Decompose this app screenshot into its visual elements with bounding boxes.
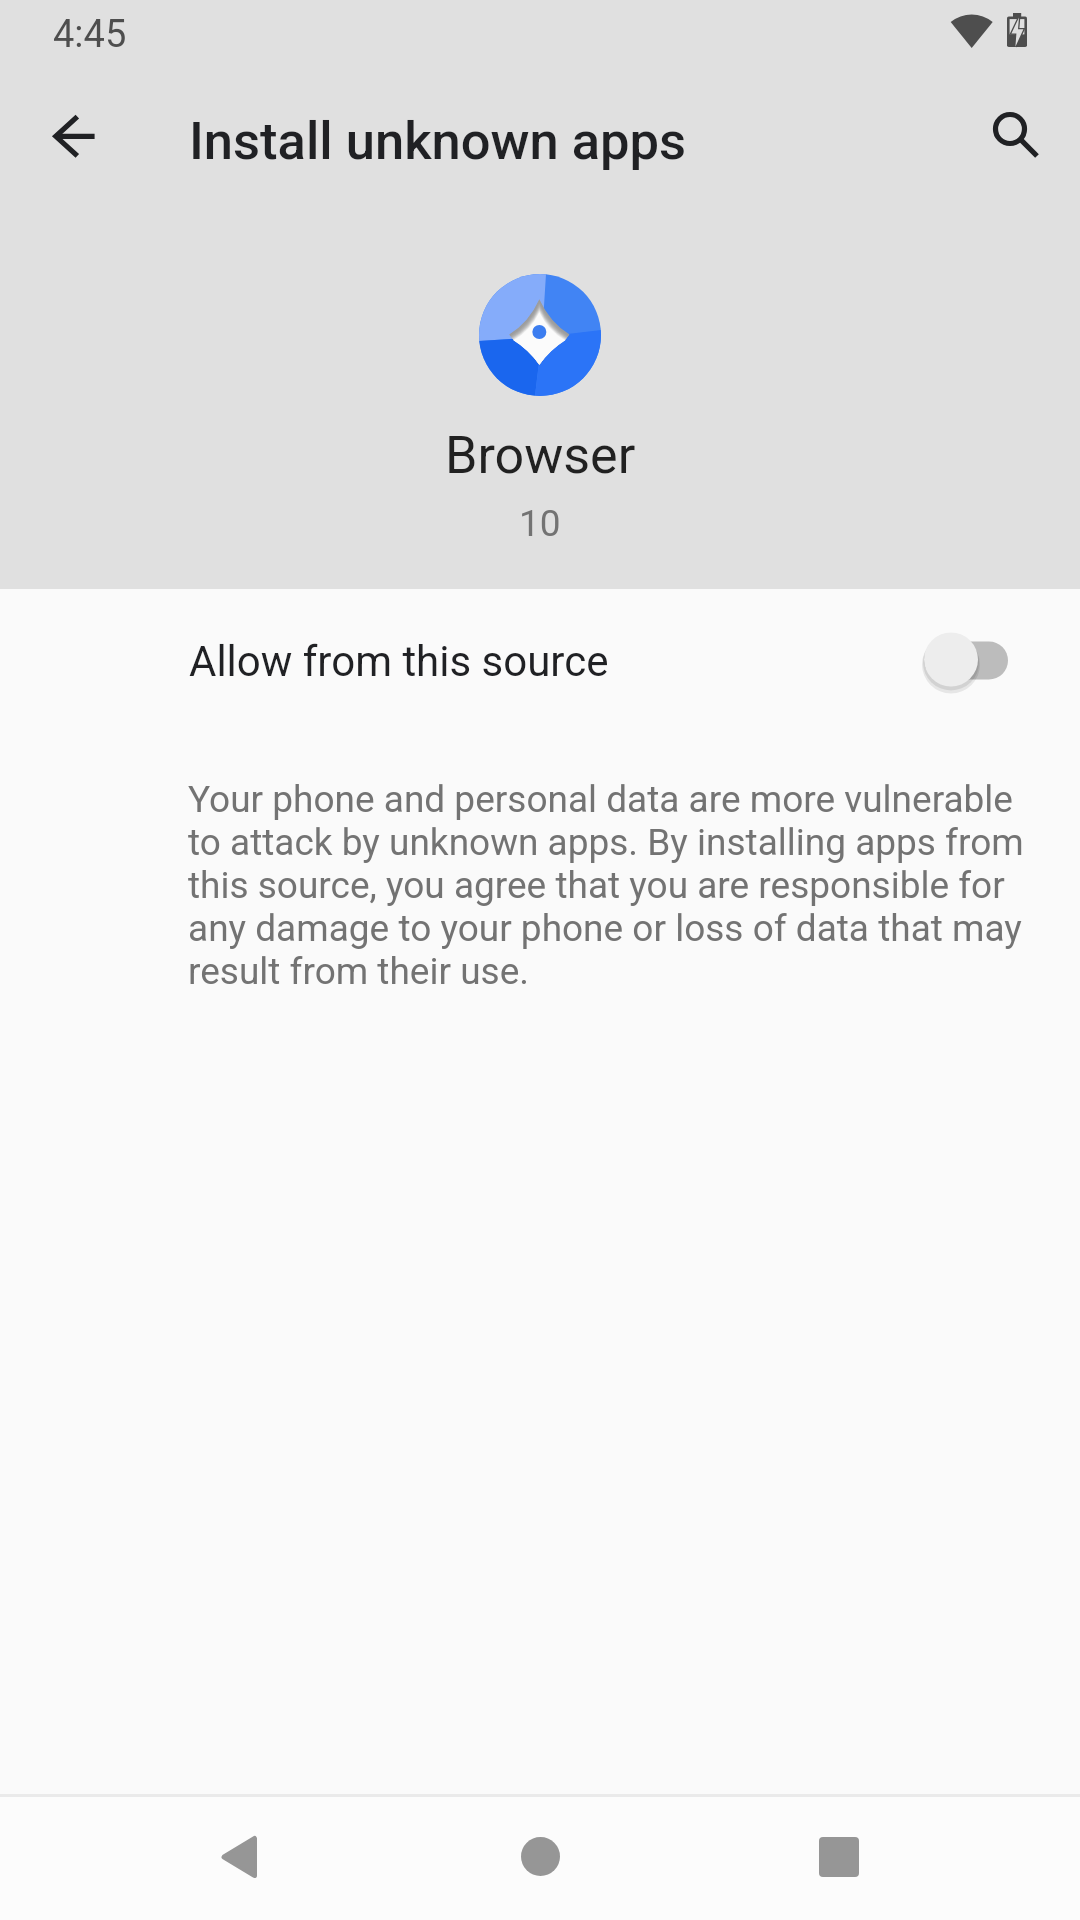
button[interactable]: Home (480, 1797, 600, 1916)
staticText: Allow from this source (189, 637, 609, 686)
staticText: 10 (519, 502, 561, 545)
button[interactable]: Search (962, 81, 1058, 177)
button[interactable]: Back (178, 1797, 298, 1916)
button[interactable]: Recent apps (779, 1797, 899, 1916)
staticText: Browser (445, 425, 636, 486)
staticText: Your phone and personal data are more vu… (188, 778, 1024, 993)
button[interactable]: Allow from this source (0, 589, 1080, 733)
button[interactable]: Navigate up (26, 88, 122, 184)
staticText: Install unknown apps (189, 110, 687, 172)
staticText: 4:45 (53, 12, 127, 57)
